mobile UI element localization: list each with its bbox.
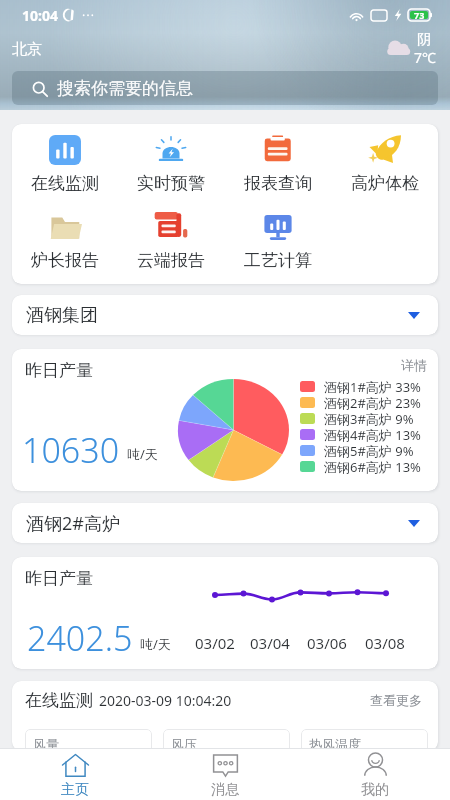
staticText: 73	[414, 9, 425, 21]
staticText: 酒钢4#高炉 13%	[324, 426, 421, 442]
staticText: 吨/天	[140, 635, 171, 653]
button[interactable]: 报表查询	[224, 135, 331, 194]
staticText: 酒钢5#高炉 9%	[324, 442, 414, 458]
button[interactable]: 主页	[0, 748, 150, 800]
button[interactable]: 详情	[401, 357, 427, 373]
button[interactable]: 在线监测	[12, 135, 118, 194]
button[interactable]: 工艺计算	[224, 212, 331, 271]
button[interactable]: 酒钢2#高炉	[12, 503, 438, 543]
button[interactable]: 酒钢集团	[12, 295, 438, 335]
staticText: 酒钢集团	[26, 304, 98, 327]
button[interactable]: 实时预警	[118, 135, 224, 194]
staticText: 2020-03-09 10:04:20	[99, 691, 232, 710]
staticText: 消息	[211, 781, 239, 799]
staticText: 在线监测	[25, 690, 93, 711]
button[interactable]: 风量	[25, 729, 152, 751]
staticText: 酒钢1#高炉 33%	[324, 378, 421, 394]
button[interactable]: 消息	[150, 748, 300, 800]
staticText: 酒钢2#高炉	[26, 511, 120, 536]
staticText: 10630	[22, 427, 120, 473]
staticText: 03/04	[250, 633, 290, 653]
staticText: 实时预警	[137, 173, 205, 194]
staticText: 云端报告	[137, 250, 205, 271]
staticText: 热风温度	[309, 736, 361, 751]
staticText: 昨日产量	[25, 568, 93, 589]
staticText: 2402.5	[27, 615, 133, 661]
staticText: 报表查询	[244, 173, 312, 194]
staticText: 酒钢2#高炉 23%	[324, 394, 421, 410]
button[interactable]: 云端报告	[118, 212, 224, 271]
button[interactable]: 炉长报告	[12, 212, 118, 271]
button[interactable]: 高炉体检	[331, 135, 438, 194]
button[interactable]: 我的	[300, 748, 450, 800]
staticText: 我的	[361, 781, 389, 799]
button[interactable]: 查看更多	[370, 692, 422, 708]
staticText: 昨日产量	[25, 360, 93, 381]
staticText: 10:04	[22, 6, 58, 25]
button[interactable]: 风压	[163, 729, 290, 751]
button[interactable]: 热风温度	[301, 729, 428, 751]
button[interactable]: 搜索你需要的信息	[12, 71, 438, 105]
staticText: 酒钢3#高炉 9%	[324, 410, 414, 426]
staticText: 03/06	[307, 633, 347, 653]
staticText: 风量	[33, 736, 59, 751]
staticText: 酒钢6#高炉 13%	[324, 458, 421, 474]
staticText: 风压	[171, 736, 197, 751]
staticText: 03/02	[195, 633, 235, 653]
staticText: 高炉体检	[351, 173, 419, 194]
staticText: 阴	[417, 31, 431, 49]
staticText: 炉长报告	[31, 250, 99, 271]
staticText: 03/08	[365, 633, 405, 653]
staticText: 在线监测	[31, 173, 99, 194]
staticText: 吨/天	[127, 445, 158, 463]
staticText: 北京	[12, 40, 42, 59]
staticText: 7℃	[414, 48, 436, 67]
staticText: 主页	[61, 781, 89, 799]
staticText: 搜索你需要的信息	[57, 78, 193, 99]
staticText: 工艺计算	[244, 250, 312, 271]
